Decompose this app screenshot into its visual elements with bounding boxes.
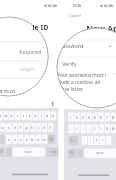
button[interactable]: [0, 0, 116, 180]
